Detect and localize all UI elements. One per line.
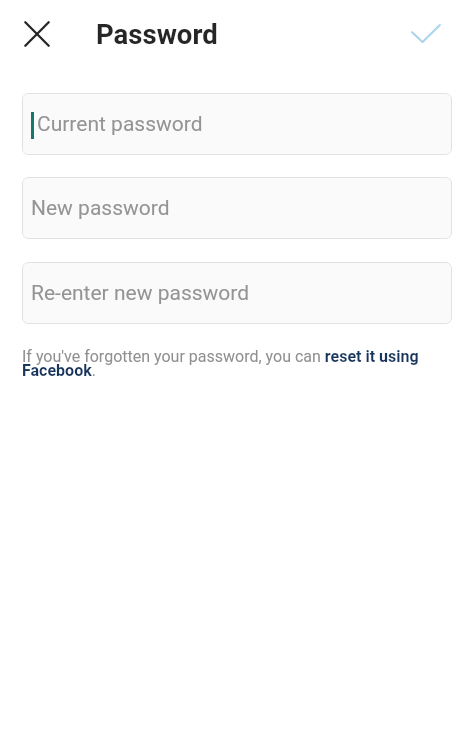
staticText: Password [96,18,218,50]
button[interactable]: Close [11,8,63,60]
staticText: Re-enter new password [31,281,250,306]
button[interactable]: If you've forgotten your password, you c… [22,347,452,380]
button[interactable]: Re-enter new password [22,262,452,324]
button[interactable]: Save password [400,7,452,59]
staticText: New password [31,196,170,221]
button[interactable]: New password [22,177,452,239]
staticText: Current password [37,112,203,137]
button[interactable]: Current password [22,93,452,155]
